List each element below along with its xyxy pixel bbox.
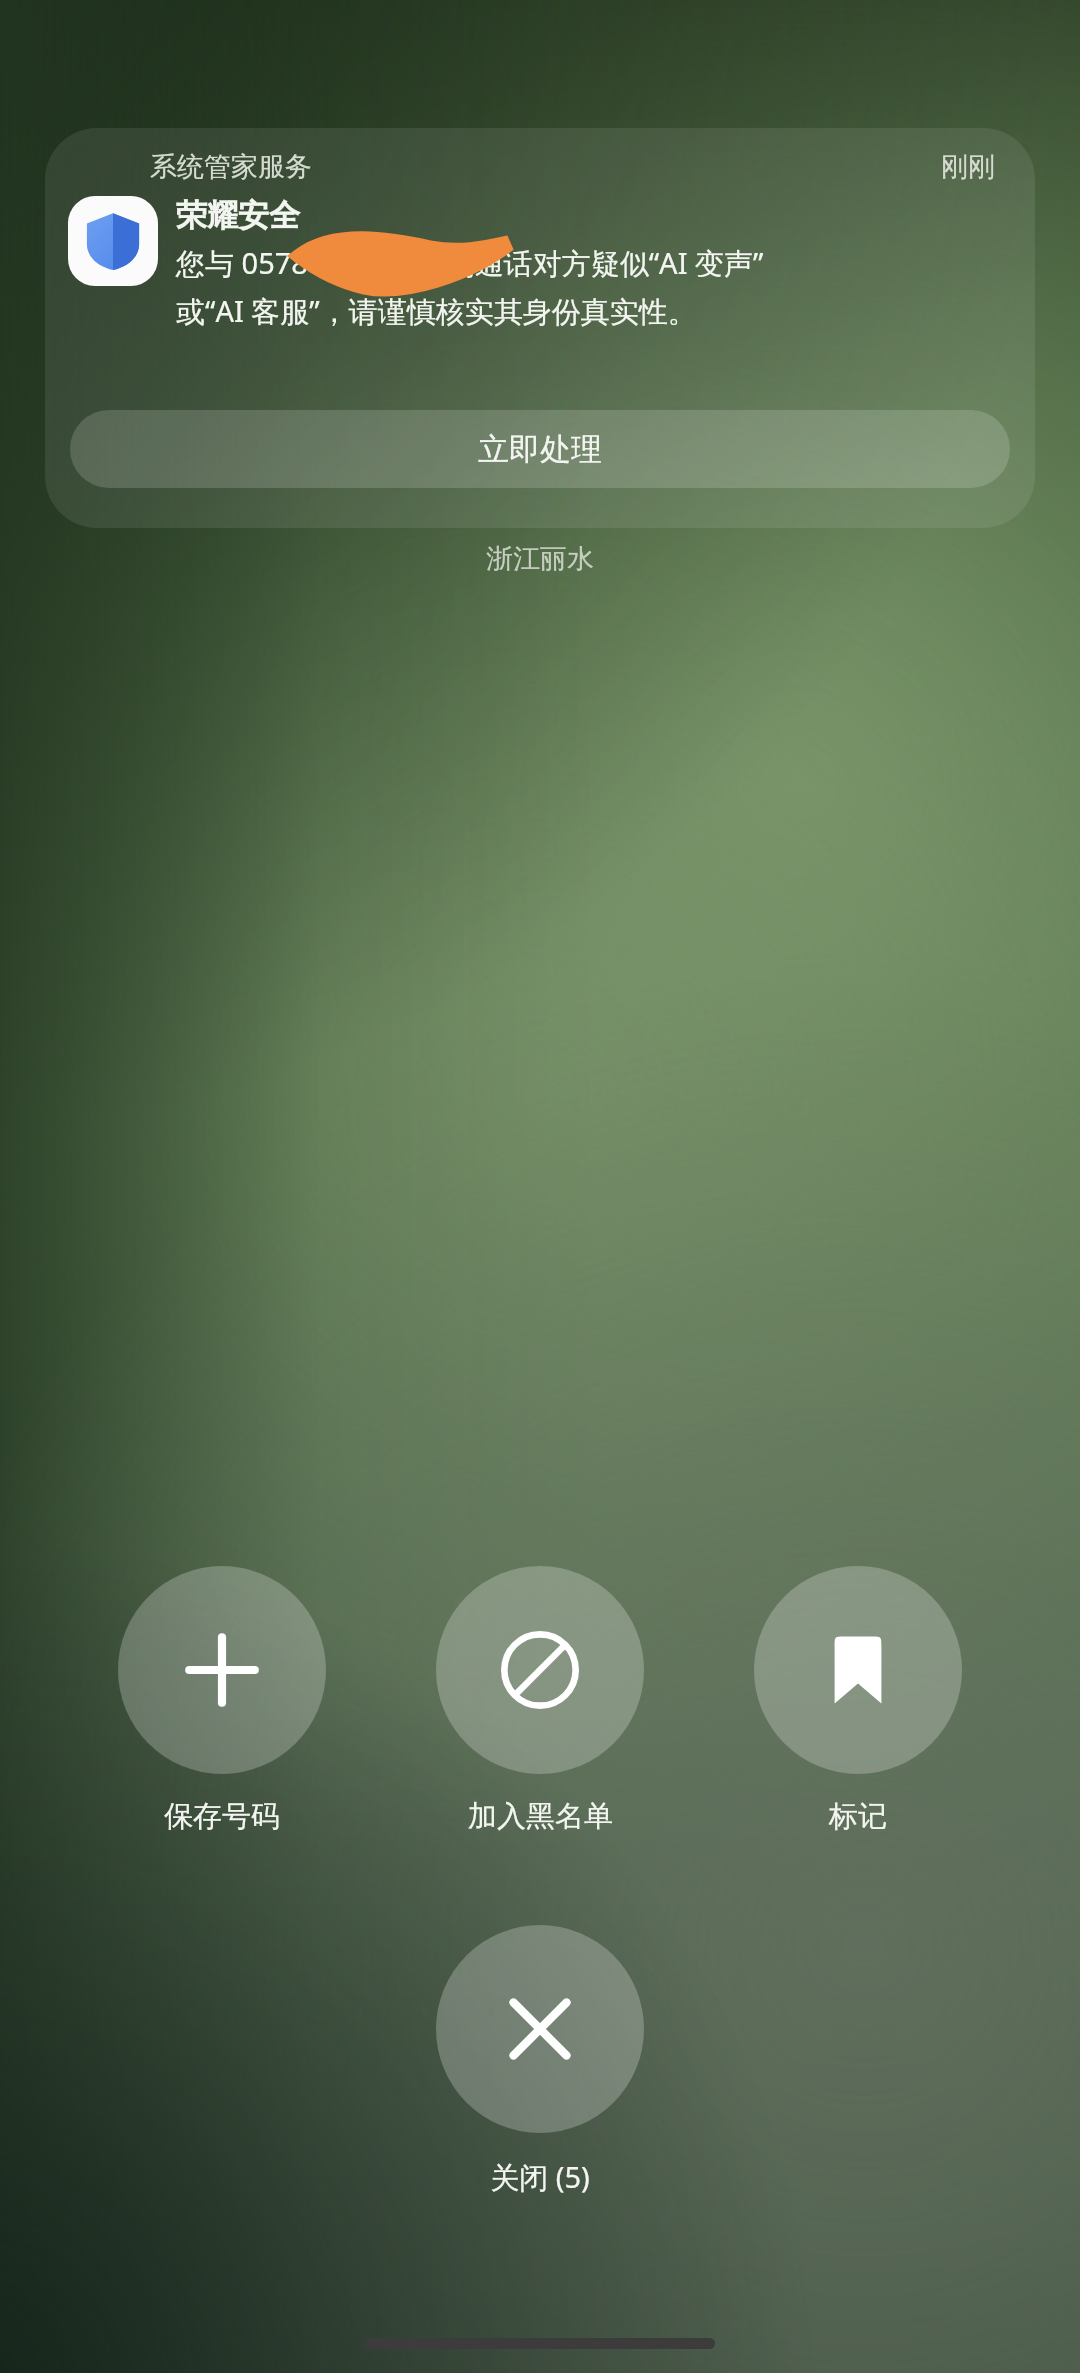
staticText: 荣耀安全	[176, 196, 300, 235]
staticText: 关闭 (5)	[490, 2157, 590, 2197]
staticText: 标记	[829, 1798, 887, 1835]
staticText: 您与 0578****8975 的通话对方疑似“AI 变声” 或“AI 客服”，…	[176, 243, 764, 331]
staticText: 立即处理	[478, 430, 602, 469]
button[interactable]: 关闭 (5)	[433, 1925, 647, 2197]
button[interactable]: 立即处理	[70, 410, 1010, 488]
staticText: 加入黑名单	[468, 1798, 613, 1835]
staticText: 浙江丽水	[0, 542, 1080, 576]
button[interactable]: 系统管家服务	[45, 128, 1035, 528]
button[interactable]: 保存号码	[115, 1566, 329, 1835]
button[interactable]: 加入黑名单	[433, 1566, 647, 1835]
staticText: 刚刚	[941, 150, 995, 184]
staticText: 系统管家服务	[150, 150, 312, 184]
staticText: 保存号码	[164, 1798, 280, 1835]
button[interactable]: 标记	[751, 1566, 965, 1835]
